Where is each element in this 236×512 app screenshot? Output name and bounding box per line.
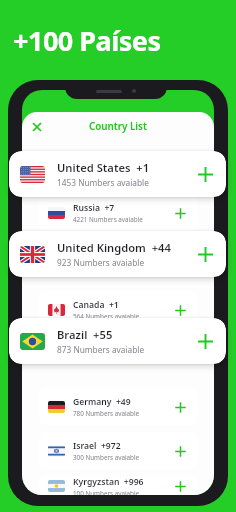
button[interactable]: Add United Kingdom (193, 242, 217, 266)
staticText: 1453 Numbers avaiable (57, 177, 149, 188)
button[interactable]: Israel +972 (39, 432, 197, 469)
staticText: Germany +49 (73, 396, 131, 408)
staticText: 780 Numbers avaiable (73, 409, 140, 418)
button[interactable]: Close (27, 117, 47, 137)
staticText: 4221 Numbers avaiable (73, 215, 143, 224)
button[interactable]: United States +1 (9, 151, 226, 197)
staticText: 873 Numbers avaiable (57, 344, 145, 355)
staticText: Country List (89, 120, 147, 133)
staticText: United Kingdom +44 (57, 240, 171, 255)
staticText: Canada +1 (73, 299, 119, 311)
button[interactable]: Add United States (193, 162, 217, 186)
button[interactable]: Germany +49 (39, 388, 197, 425)
button[interactable]: Brazil +55 (9, 318, 226, 364)
staticText: 564 Numbers avaiable (73, 312, 140, 321)
staticText: Russia +7 (73, 202, 115, 214)
button[interactable]: United Kingdom +44 (9, 231, 226, 277)
button[interactable]: Add Germany (171, 398, 189, 416)
staticText: 100 Numbers avaiable (73, 489, 140, 495)
button[interactable]: Add Israel (171, 442, 189, 460)
staticText: 300 Numbers avaiable (73, 453, 140, 462)
button[interactable]: Canada +1 (39, 291, 197, 328)
staticText: Israel +972 (73, 440, 121, 452)
button[interactable]: Add Russia (171, 204, 189, 222)
staticText: +100 Países (13, 22, 161, 59)
button[interactable]: Add Canada (171, 301, 189, 319)
button[interactable]: Add Brazil (193, 329, 217, 353)
button[interactable]: Add Kyrgyzstan (171, 477, 189, 495)
button[interactable]: Kyrgyzstan +996 (39, 476, 197, 495)
staticText: 923 Numbers avaiable (57, 257, 145, 268)
staticText: Kyrgyzstan +996 (73, 476, 144, 488)
button[interactable]: Russia +7 (39, 194, 197, 231)
staticText: Brazil +55 (57, 327, 113, 342)
staticText: United States +1 (57, 160, 150, 175)
